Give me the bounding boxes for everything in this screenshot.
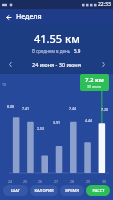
staticText: 22:33 — [98, 1, 111, 8]
staticText: 4.44 — [85, 118, 92, 123]
staticText: КАЛОРИЯ — [34, 188, 54, 193]
button[interactable]: КАЛОРИЯ — [30, 185, 58, 196]
staticText: ШАГ — [11, 188, 20, 193]
staticText: 3.91 — [53, 120, 60, 125]
button[interactable]: 7.2 км — [80, 74, 109, 91]
staticText: 24 июня - 30 июня — [15, 61, 98, 68]
staticText: РАССТ — [92, 188, 105, 193]
button[interactable]: ВРЕМЯ — [60, 185, 84, 196]
staticText: 7.41 — [22, 106, 29, 111]
button[interactable]: ШАГ — [3, 185, 28, 196]
button[interactable]: Next week — [98, 59, 108, 69]
button[interactable]: Back — [0, 9, 16, 25]
staticText: 7.2 км — [85, 76, 104, 84]
staticText: 30 июня — [87, 84, 102, 89]
button[interactable]: Previous week — [5, 59, 15, 69]
staticText: 26 — [38, 179, 43, 184]
staticText: 24 — [8, 179, 13, 184]
staticText: 30 — [102, 179, 107, 184]
staticText: 29 — [86, 179, 91, 184]
staticText: 2.53 — [37, 126, 44, 131]
staticText: 8.08 — [7, 104, 14, 109]
button[interactable]: РАССТ — [86, 185, 110, 196]
staticText: 28 — [70, 179, 75, 184]
staticText: Неделя — [16, 12, 42, 22]
staticText: ВРЕМЯ — [65, 188, 79, 193]
staticText: 7.44 — [69, 106, 76, 111]
staticText: 7.20 — [101, 107, 108, 112]
staticText: 27 — [54, 179, 59, 184]
staticText: 5.9 — [74, 48, 81, 54]
staticText: В среднем в день — [32, 48, 71, 54]
staticText: 25 — [23, 179, 28, 184]
staticText: 41.55 км — [34, 31, 80, 46]
staticText: 10 — [2, 82, 7, 87]
